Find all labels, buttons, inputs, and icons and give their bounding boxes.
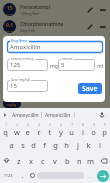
button[interactable]: , <box>17 168 28 183</box>
button[interactable]: g <box>50 137 61 153</box>
button[interactable]: 5 <box>44 122 55 137</box>
staticText: 3 <box>27 123 29 127</box>
button[interactable]: Delete <box>96 20 109 33</box>
button[interactable]: 125 <box>7 59 48 71</box>
staticText: u <box>69 127 74 137</box>
button[interactable]: x <box>25 153 37 168</box>
staticText: 0 <box>104 123 106 127</box>
staticText: 6 <box>60 123 62 127</box>
staticText: i <box>82 127 84 137</box>
button[interactable]: 8 <box>77 122 88 137</box>
staticText: 9 <box>93 123 95 127</box>
button[interactable]: Delete <box>96 3 109 16</box>
staticText: Paracetamol <box>20 4 51 11</box>
staticText: Drug Name <box>11 39 28 43</box>
staticText: mg <box>50 63 58 70</box>
staticText: 4 <box>38 123 40 127</box>
button[interactable]: More suggestions <box>0 108 9 122</box>
button[interactable]: n <box>73 153 85 168</box>
button[interactable]: Amoxycillin <box>9 108 41 122</box>
button[interactable]: 3 <box>22 122 33 137</box>
staticText: , <box>22 172 24 180</box>
staticText: 15 <box>7 5 13 12</box>
staticText: z <box>17 156 21 166</box>
staticText: 8 <box>82 123 84 127</box>
staticText: 15 <box>10 82 17 90</box>
button[interactable]: h <box>61 137 72 153</box>
button[interactable]: 15 <box>0 1 110 18</box>
staticText: amount of drug <box>11 57 34 61</box>
staticText: j <box>77 140 79 150</box>
button[interactable]: a <box>5 137 17 153</box>
staticText: mg/kg <box>6 12 14 15</box>
staticText: x <box>29 156 33 166</box>
button[interactable]: f <box>39 137 50 153</box>
staticText: f <box>43 140 46 150</box>
button[interactable]: 7 <box>66 122 77 137</box>
button[interactable]: Edit <box>83 3 96 16</box>
staticText: y <box>59 127 63 137</box>
button[interactable]: 15 <box>7 80 48 92</box>
button[interactable]: s <box>17 137 28 153</box>
button[interactable]: m <box>85 153 97 168</box>
button[interactable]: Save <box>78 83 102 94</box>
button[interactable]: Enter <box>95 168 110 183</box>
staticText: d <box>31 140 36 150</box>
button[interactable]: Amoxicillin <box>42 108 74 122</box>
button[interactable]: 6 <box>55 122 66 137</box>
button[interactable]: Amoxicillin <box>7 41 103 53</box>
staticText: ml <box>97 63 103 70</box>
staticText: m <box>87 156 95 166</box>
staticText: t <box>48 127 51 137</box>
staticText: a <box>9 140 14 150</box>
staticText: Amoxicillin <box>45 112 71 119</box>
staticText: 1 <box>5 123 7 127</box>
button[interactable]: 0.1 <box>0 18 110 35</box>
button[interactable]: 9 <box>88 122 99 137</box>
staticText: Amoxycillin <box>12 112 39 119</box>
button[interactable]: 2 <box>11 122 22 137</box>
staticText: Save <box>82 84 98 94</box>
button[interactable]: ?123 <box>0 168 17 183</box>
staticText: k <box>86 140 91 150</box>
button[interactable]: 4 <box>33 122 44 137</box>
staticText: o <box>91 127 96 137</box>
button[interactable]: v <box>49 153 61 168</box>
button[interactable]: 1 <box>0 122 11 137</box>
staticText: mg/kg <box>7 103 17 107</box>
staticText: 0.1 <box>6 22 14 29</box>
staticText: . <box>89 172 91 180</box>
staticText: v <box>53 156 57 166</box>
staticText: volume <box>62 57 73 61</box>
button[interactable]: Voice input <box>93 108 110 122</box>
staticText: w <box>14 127 20 137</box>
staticText: b <box>65 156 70 166</box>
staticText: Dose (mg/kg) <box>11 78 30 82</box>
staticText: r <box>37 127 41 137</box>
button[interactable]: 5 <box>58 59 95 71</box>
button[interactable]: c <box>37 153 49 168</box>
button[interactable]: z <box>13 153 25 168</box>
button[interactable]: . <box>84 168 95 183</box>
button[interactable]: j <box>72 137 83 153</box>
staticText: g <box>53 140 58 150</box>
button[interactable]: Emoji <box>28 168 37 183</box>
button[interactable]: Edit <box>83 20 96 33</box>
button[interactable]: Shift <box>0 153 13 168</box>
staticText: c <box>41 156 45 166</box>
staticText: 2mg/5ml <box>20 28 35 33</box>
button[interactable]: k <box>83 137 94 153</box>
button[interactable]: b <box>61 153 73 168</box>
button[interactable]: Backspace <box>97 153 110 168</box>
staticText: 2 <box>16 123 18 127</box>
button[interactable]: 0 <box>99 122 110 137</box>
staticText: n <box>77 156 82 166</box>
staticText: 125 <box>10 61 21 69</box>
staticText: Amoxicillin <box>10 43 41 51</box>
staticText: 5 <box>49 123 51 127</box>
button[interactable]: d <box>28 137 39 153</box>
staticText: 7 <box>71 123 73 127</box>
staticText: q <box>3 127 8 137</box>
button[interactable]: l <box>94 137 105 153</box>
